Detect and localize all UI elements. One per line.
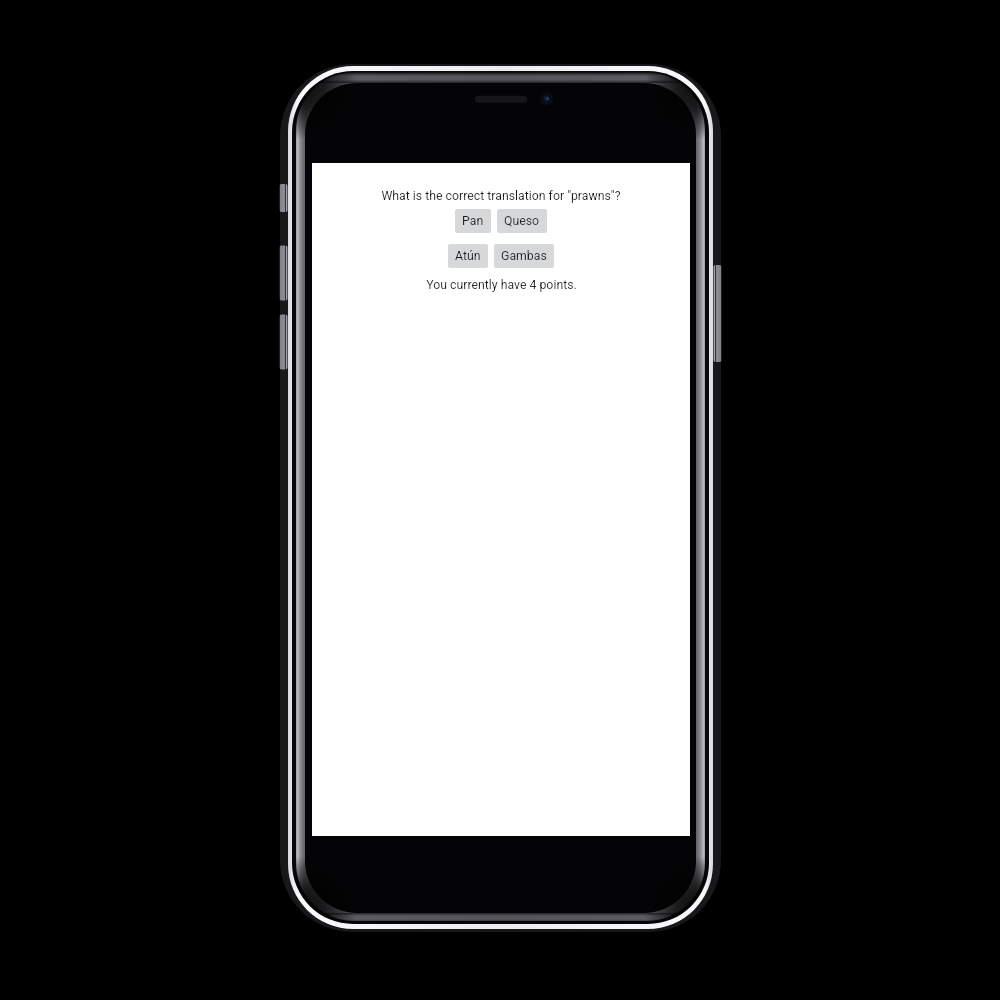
staticText: Gambas [501,249,547,263]
button[interactable]: Answer Gambas [494,244,554,268]
staticText: Atún [455,249,481,263]
staticText: Pan [462,214,484,228]
button[interactable]: Answer Pan [455,209,491,233]
staticText: Queso [504,214,540,228]
staticText: You currently have 4 points. [426,278,577,292]
button[interactable]: Answer Queso [497,209,547,233]
staticText: What is the correct translation for "pra… [381,189,621,203]
button[interactable]: Answer Atún [448,244,488,268]
